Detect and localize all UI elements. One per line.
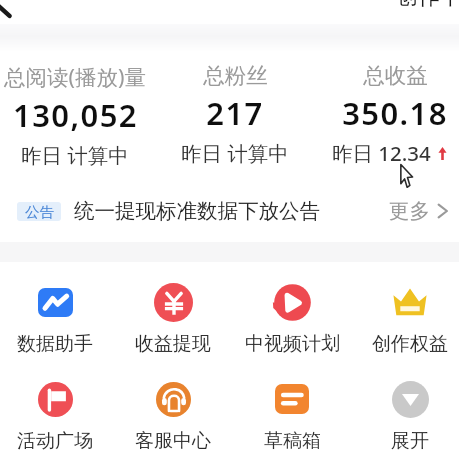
button[interactable]: 公告 [0, 192, 459, 230]
staticText: 收益提现 [135, 332, 211, 356]
staticText: 创作权益 [372, 332, 448, 356]
staticText: 昨日 计算中 [21, 141, 129, 169]
button[interactable]: 创作权益 [355, 281, 459, 356]
button[interactable]: 总粉丝 [135, 62, 335, 167]
staticText: 公告 [25, 203, 54, 221]
button[interactable]: 活动广场 [0, 378, 110, 453]
staticText: 昨日 12.34 [332, 139, 431, 167]
button[interactable]: 总收益 [295, 62, 459, 167]
button[interactable]: 总阅读(播放)量 [0, 62, 175, 169]
button[interactable]: 草稿箱 [237, 378, 347, 453]
staticText: 草稿箱 [264, 429, 321, 453]
button[interactable]: 数据助手 [0, 281, 110, 356]
staticText: 中视频计划 [245, 332, 340, 356]
button[interactable]: 收益提现 [118, 281, 228, 356]
staticText: 数据助手 [17, 332, 93, 356]
button[interactable]: 中视频计划 [237, 281, 347, 356]
staticText: 130,052 [13, 94, 138, 136]
staticText: 总粉丝 [203, 62, 268, 89]
staticText: 总阅读(播放)量 [4, 62, 146, 91]
button[interactable]: 客服中心 [118, 378, 228, 453]
staticText: 创作中心 [396, 0, 459, 11]
staticText: 展开 [391, 429, 429, 453]
staticText: 昨日 计算中 [181, 139, 289, 167]
staticText: 客服中心 [135, 429, 211, 453]
staticText: 更多 [389, 198, 430, 224]
staticText: 活动广场 [17, 429, 93, 453]
staticText: 217 [206, 92, 264, 134]
button[interactable]: Back [0, 0, 17, 18]
staticText: 350.18 [342, 92, 448, 134]
staticText: 统一提现标准数据下放公告 [74, 198, 320, 224]
staticText: 总收益 [363, 62, 428, 89]
button[interactable]: 展开 [355, 378, 459, 453]
